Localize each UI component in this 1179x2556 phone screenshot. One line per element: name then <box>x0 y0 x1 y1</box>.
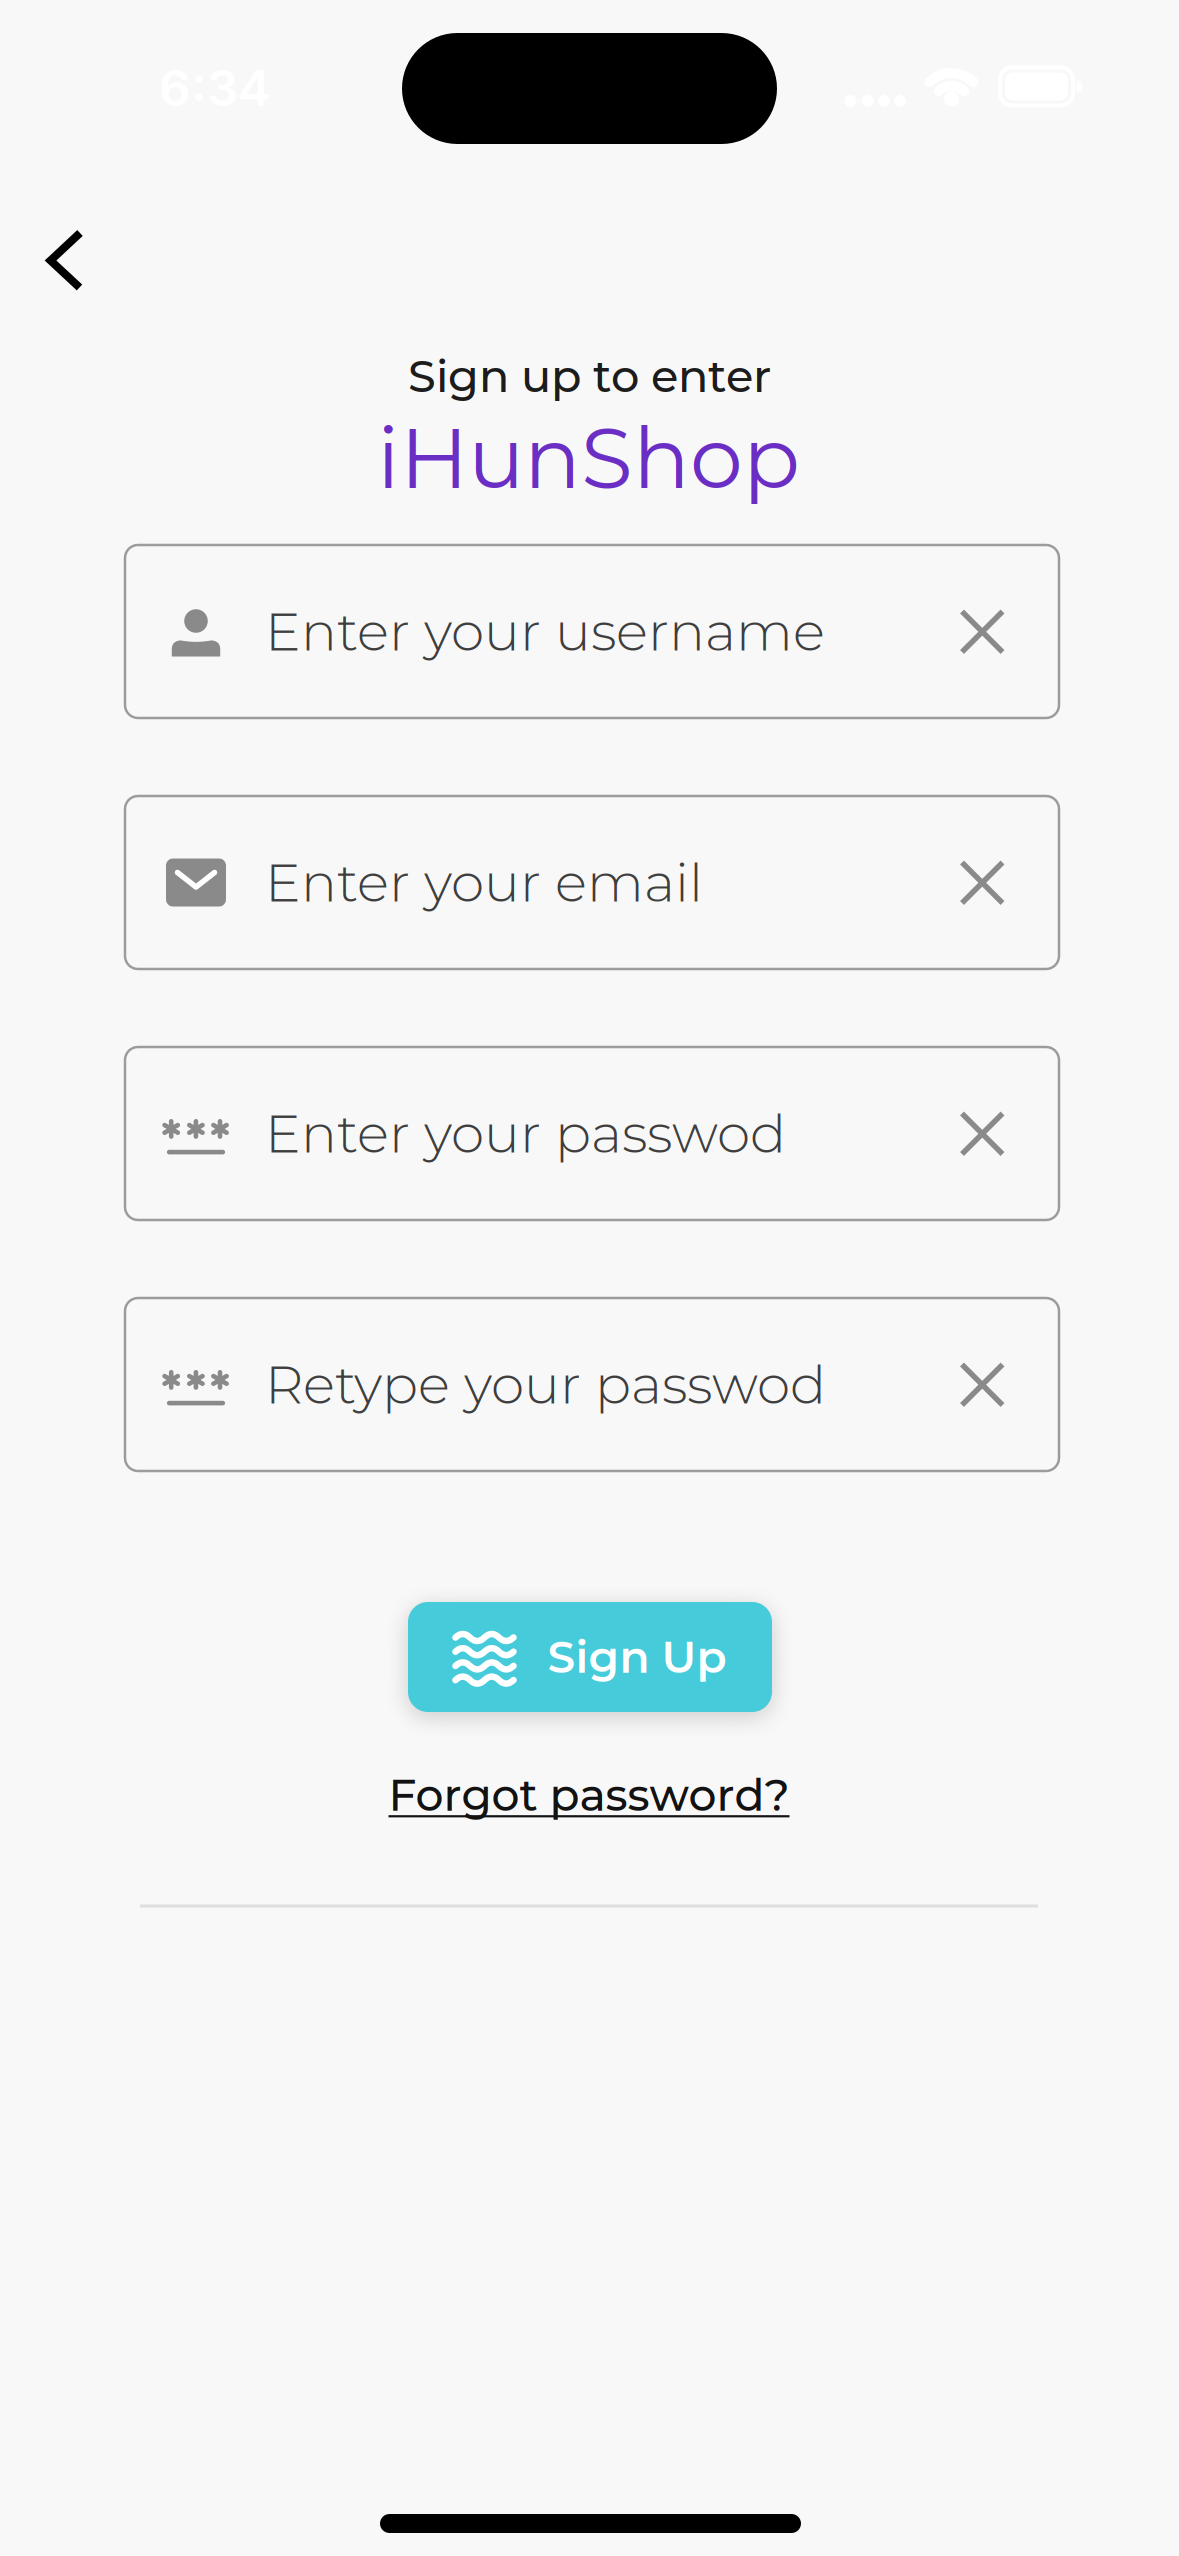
button[interactable]: Enter your username <box>125 545 1059 718</box>
button[interactable]: Sign Up <box>408 1602 772 1712</box>
staticText: Enter your email <box>265 850 703 915</box>
staticText: Sign Up <box>547 1630 726 1684</box>
button[interactable]: Forgot password? <box>388 1768 789 1822</box>
staticText: Enter your username <box>265 599 825 664</box>
button[interactable]: Retype your passwod <box>125 1298 1059 1471</box>
button[interactable] <box>960 609 1004 653</box>
staticText: Retype your passwod <box>265 1352 826 1417</box>
button[interactable] <box>960 1111 1004 1155</box>
staticText: Sign up to enter <box>408 349 771 403</box>
button[interactable]: Enter your passwod <box>125 1047 1059 1220</box>
button[interactable] <box>35 220 95 300</box>
staticText: Enter your passwod <box>265 1101 786 1166</box>
button[interactable]: Enter your email <box>125 796 1059 969</box>
button[interactable] <box>960 860 1004 904</box>
staticText: Forgot password? <box>388 1768 789 1822</box>
staticText: iHunShop <box>377 407 800 509</box>
button[interactable] <box>960 1362 1004 1406</box>
